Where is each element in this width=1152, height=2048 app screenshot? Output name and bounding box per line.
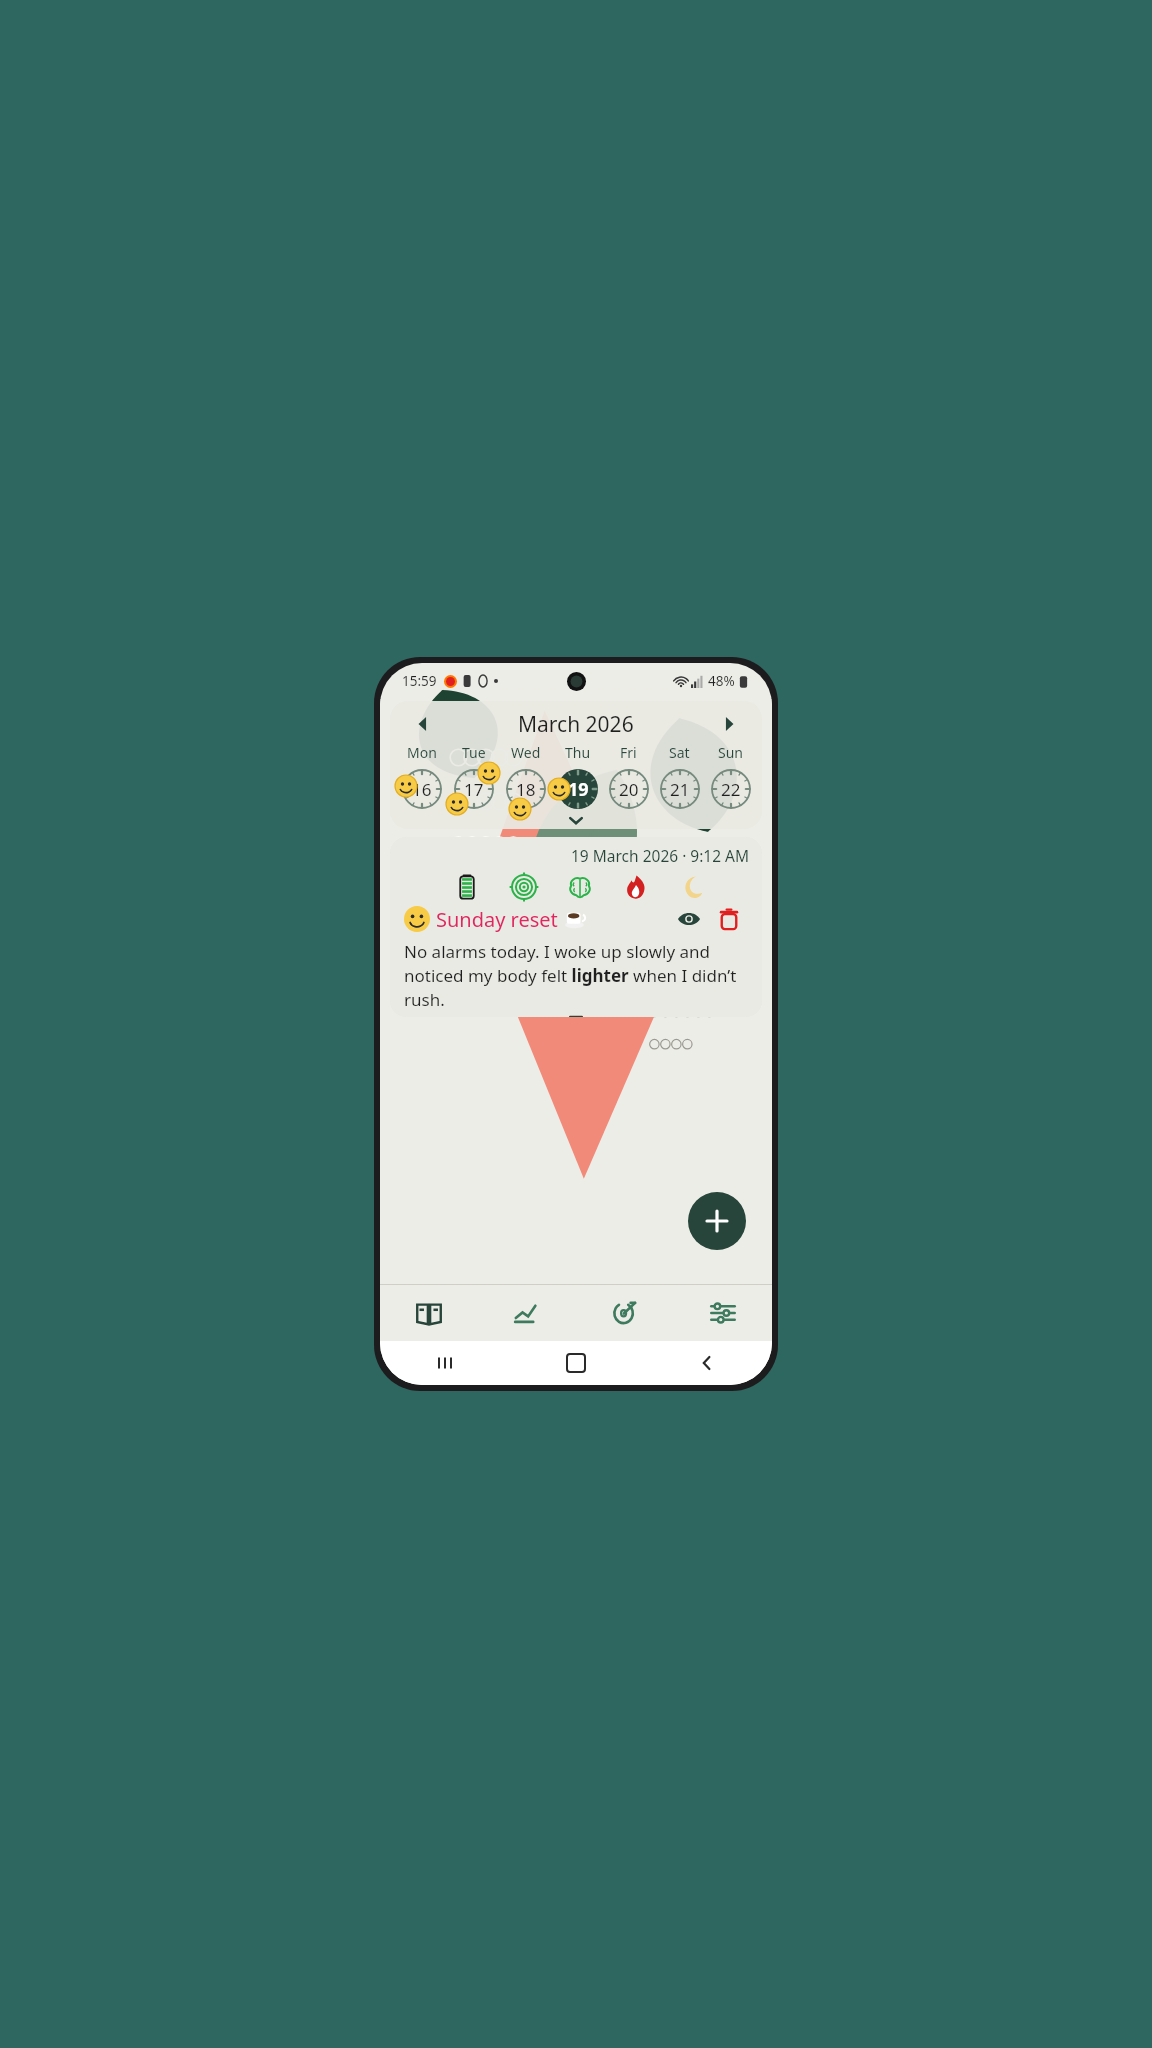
button[interactable]: 17 (451, 766, 497, 812)
button[interactable]: Previous month (408, 709, 438, 739)
staticText: Thu (565, 743, 591, 762)
staticText: Fri (620, 743, 637, 762)
staticText: Sun (718, 743, 743, 762)
staticText: 18 (516, 778, 536, 801)
staticText: No alarms today. I woke up slowly and no… (404, 940, 748, 1017)
staticText: March 2026 (518, 710, 634, 739)
staticText: 20 (619, 778, 639, 801)
staticText: Wed (511, 743, 541, 762)
button[interactable]: Settings (674, 1285, 772, 1341)
button[interactable]: 19 (555, 766, 601, 812)
button[interactable]: 19 March 2026 · 9:12 AM (390, 837, 762, 1017)
button[interactable]: 21 (657, 766, 703, 812)
staticText: 16 (412, 778, 432, 801)
button[interactable]: Add entry (688, 1192, 746, 1250)
button[interactable]: Goals (576, 1285, 674, 1341)
staticText: 19 (568, 777, 589, 802)
button[interactable]: View entry (674, 904, 704, 934)
button[interactable]: Delete entry (714, 904, 744, 934)
staticText: Sat (669, 743, 690, 762)
staticText: Sunday reset (436, 906, 558, 933)
button[interactable]: Next month (714, 709, 744, 739)
button[interactable]: Expand calendar (390, 812, 762, 829)
button[interactable]: 22 (708, 766, 754, 812)
staticText: 17 (464, 778, 484, 801)
staticText: 22 (721, 778, 741, 801)
staticText: 15:59 (402, 672, 437, 690)
staticText: Mon (407, 743, 437, 762)
button[interactable]: 16 (399, 766, 445, 812)
button[interactable]: Journal (380, 1285, 478, 1341)
staticText: Tue (462, 743, 486, 762)
button[interactable]: 18 (503, 766, 549, 812)
staticText: 19 March 2026 · 9:12 AM (571, 845, 750, 866)
staticText: 48% (708, 672, 735, 690)
button[interactable]: 20 (606, 766, 652, 812)
button[interactable]: Trends (478, 1285, 576, 1341)
staticText: 21 (670, 778, 690, 801)
